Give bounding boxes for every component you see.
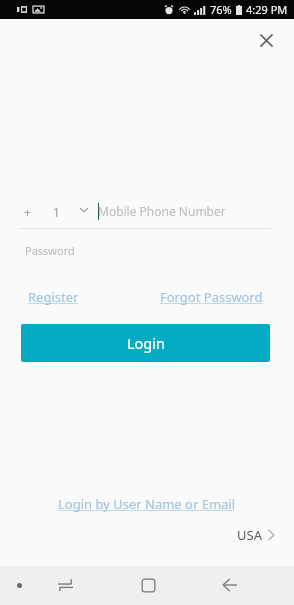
button[interactable]: + — [18, 199, 92, 225]
button[interactable]: Register — [28, 288, 79, 306]
staticText: USA — [237, 526, 262, 544]
staticText: Login by User Name or Email — [58, 495, 236, 513]
staticText: + — [24, 204, 31, 220]
button[interactable]: Login — [21, 324, 270, 362]
button[interactable]: USA — [237, 526, 274, 544]
button[interactable]: Login by User Name or Email — [58, 495, 236, 513]
button[interactable]: Forgot Password — [160, 288, 263, 306]
button[interactable]: Close — [249, 23, 283, 57]
staticText: 4:29 PM — [246, 2, 288, 17]
staticText: 76% — [210, 2, 232, 17]
staticText: 1 — [53, 204, 60, 220]
staticText: Forgot Password — [160, 288, 263, 306]
button[interactable]: Mobile Phone Number — [94, 199, 268, 225]
staticText: Register — [28, 288, 79, 306]
button[interactable]: Back — [214, 569, 246, 601]
staticText: Mobile Phone Number — [98, 203, 226, 219]
button[interactable]: Password — [19, 238, 271, 262]
staticText: Password — [25, 243, 75, 258]
button[interactable]: Home — [132, 569, 164, 601]
button[interactable]: Recent apps — [49, 569, 81, 601]
button[interactable]: Assistant — [9, 575, 29, 595]
staticText: Login — [127, 333, 165, 353]
